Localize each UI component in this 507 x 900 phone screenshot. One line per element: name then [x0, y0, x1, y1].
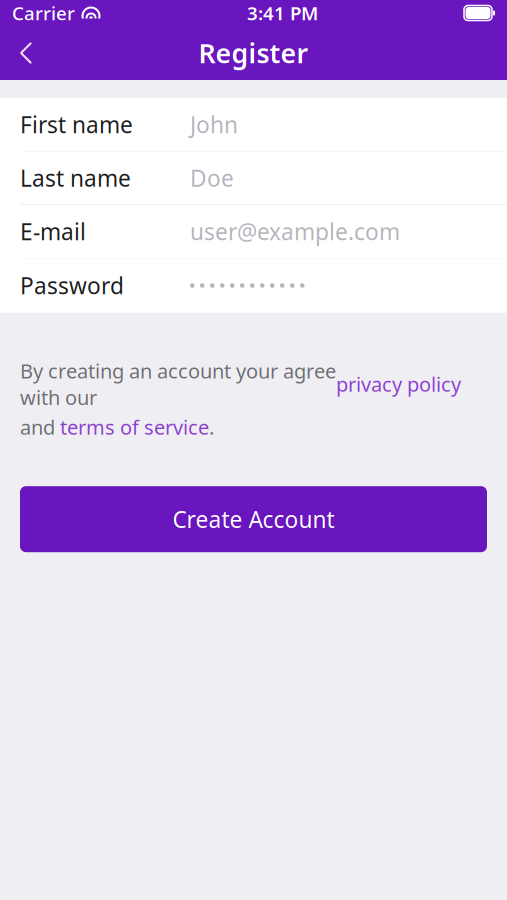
- staticText: First name: [20, 109, 133, 139]
- button[interactable]: First name: [0, 98, 507, 151]
- staticText: Create Account: [172, 504, 334, 534]
- staticText: .: [209, 414, 214, 440]
- button[interactable]: Back: [0, 26, 52, 80]
- button[interactable]: Create Account: [20, 486, 487, 552]
- staticText: Carrier: [12, 1, 75, 25]
- button[interactable]: E-mail: [0, 205, 507, 258]
- staticText: Doe: [190, 163, 234, 193]
- button[interactable]: terms of service: [60, 414, 209, 440]
- staticText: Register: [198, 35, 308, 71]
- staticText: Last name: [20, 163, 131, 193]
- staticText: Password: [20, 270, 124, 300]
- staticText: and: [20, 414, 60, 440]
- staticText: user@example.com: [190, 216, 400, 246]
- button[interactable]: Last name: [0, 151, 507, 205]
- staticText: E-mail: [20, 216, 86, 246]
- staticText: By creating an account your agree with o…: [20, 357, 336, 411]
- staticText: privacy policy: [336, 371, 461, 397]
- staticText: terms of service: [60, 414, 209, 440]
- staticText: John: [190, 109, 238, 139]
- button[interactable]: Password: [0, 258, 507, 312]
- button[interactable]: privacy policy: [336, 371, 461, 397]
- staticText: 3:41 PM: [247, 1, 318, 25]
